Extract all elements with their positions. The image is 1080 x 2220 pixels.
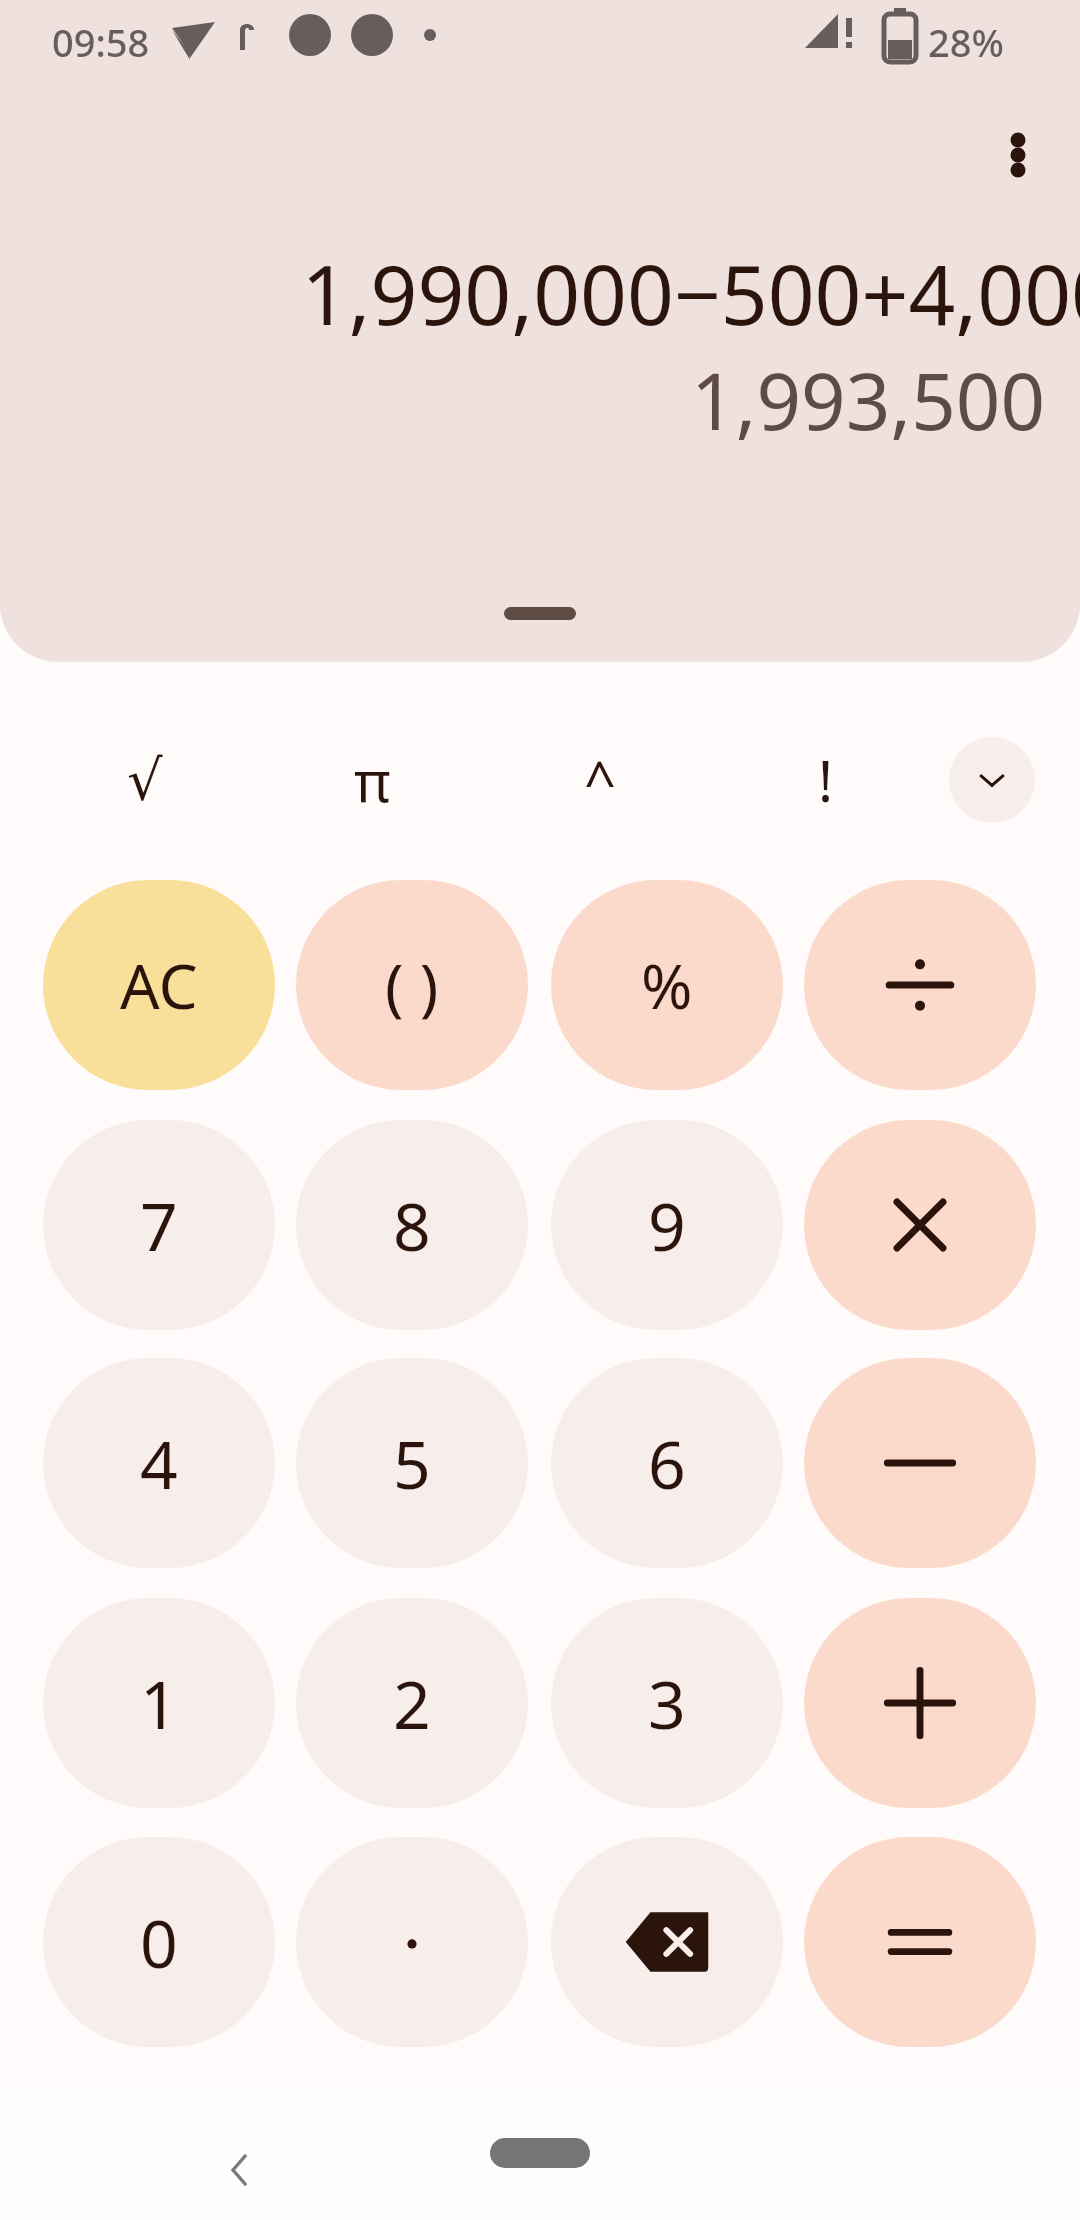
button[interactable]: 4 xyxy=(43,1358,275,1568)
staticText: 1,993,500 xyxy=(690,347,1045,453)
button[interactable]: π xyxy=(302,700,442,860)
staticText: 3 xyxy=(648,1658,686,1748)
button[interactable]: ( ) xyxy=(296,880,528,1090)
button[interactable]: Back xyxy=(180,2110,300,2220)
button[interactable]: 5 xyxy=(296,1358,528,1568)
staticText: 0 xyxy=(140,1897,178,1987)
staticText: 5 xyxy=(393,1418,431,1508)
staticText: ! xyxy=(818,742,834,818)
button[interactable]: √ xyxy=(75,700,215,860)
button[interactable]: ! xyxy=(756,700,896,860)
staticText: ( ) xyxy=(385,943,439,1027)
button[interactable]: Home xyxy=(490,2138,590,2168)
button[interactable]: Decimal point xyxy=(296,1837,528,2047)
staticText: 7 xyxy=(140,1180,178,1270)
button[interactable]: AC xyxy=(43,880,275,1090)
button[interactable]: ^ xyxy=(530,700,670,860)
button[interactable]: Plus xyxy=(804,1598,1036,1808)
staticText: 9 xyxy=(648,1180,686,1270)
staticText: 2 xyxy=(393,1658,431,1748)
staticText: 6 xyxy=(648,1418,686,1508)
button[interactable]: Expand xyxy=(949,737,1035,823)
staticText: π xyxy=(354,742,391,818)
button[interactable]: Divide xyxy=(804,880,1036,1090)
staticText: √ xyxy=(127,748,163,813)
button[interactable]: 8 xyxy=(296,1120,528,1330)
button[interactable]: 2 xyxy=(296,1598,528,1808)
staticText: 09:58 xyxy=(52,16,150,68)
button[interactable]: % xyxy=(551,880,783,1090)
staticText: 4 xyxy=(140,1418,178,1508)
button[interactable]: Multiply xyxy=(804,1120,1036,1330)
button[interactable]: 1 xyxy=(43,1598,275,1808)
button[interactable]: 3 xyxy=(551,1598,783,1808)
staticText: 28% xyxy=(928,16,1004,68)
button[interactable]: Equals xyxy=(804,1837,1036,2047)
button[interactable]: 9 xyxy=(551,1120,783,1330)
button[interactable]: Minus xyxy=(804,1358,1036,1568)
button[interactable]: 7 xyxy=(43,1120,275,1330)
staticText: AC xyxy=(120,943,198,1027)
button[interactable]: 0 xyxy=(43,1837,275,2047)
staticText: ^ xyxy=(584,742,617,818)
staticText: 8 xyxy=(393,1180,431,1270)
button[interactable]: 6 xyxy=(551,1358,783,1568)
button[interactable]: More options xyxy=(958,95,1078,215)
button[interactable]: Backspace xyxy=(551,1837,783,2047)
staticText: 1,990,000−500+4,000 xyxy=(301,237,1080,349)
staticText: % xyxy=(641,943,693,1027)
staticText: 1 xyxy=(140,1658,178,1748)
